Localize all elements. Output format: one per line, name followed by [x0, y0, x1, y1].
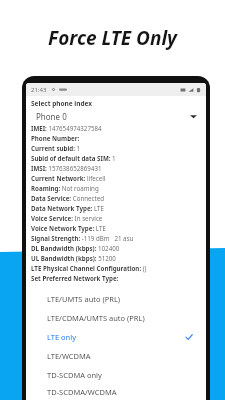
staticText: Voice Network Type: LTE: [31, 224, 201, 234]
staticText: LTE/WCDMA: [47, 351, 91, 361]
staticText: 21:43: [31, 86, 47, 94]
button[interactable]: TD-SCDMA/WCDMA: [35, 384, 203, 400]
button[interactable]: LTE only: [35, 327, 203, 346]
button[interactable]: LTE/CDMA/UMTS auto (PRL): [35, 308, 203, 327]
staticText: Force LTE Only: [48, 25, 177, 51]
staticText: Current subid: 1: [31, 144, 201, 154]
staticText: Phone Number:: [31, 134, 201, 144]
staticText: Voice Service: In service: [31, 214, 201, 224]
staticText: UL Bandwidth (kbps): 51200: [31, 254, 201, 264]
staticText: Signal Strength: -119 dBm 21 asu: [31, 234, 201, 244]
staticText: TD-SCDMA only: [47, 370, 102, 380]
staticText: Set Preferred Network Type:: [31, 274, 201, 284]
staticText: LTE/UMTS auto (PRL): [47, 294, 121, 304]
staticText: IMSI: 157638652869431: [31, 164, 201, 174]
staticText: Subid of default data SIM: 1: [31, 154, 201, 164]
other: Selected: [185, 333, 193, 341]
staticText: LTE Physical Channel Configuration: (): [31, 264, 201, 274]
staticText: Roaming: Not roaming: [31, 184, 201, 194]
other: Open phone index dropdown: [190, 114, 197, 119]
button[interactable]: TD-SCDMA only: [35, 365, 203, 384]
staticText: Select phone index: [31, 99, 93, 108]
staticText: Phone 0: [36, 111, 67, 122]
staticText: DL Bandwidth (kbps): 102400: [31, 244, 201, 254]
staticText: TD-SCDMA/WCDMA: [47, 387, 117, 397]
staticText: IMEI: 147654974327584: [31, 124, 201, 134]
staticText: LTE only: [47, 332, 77, 342]
staticText: Data Network Type: LTE: [31, 204, 201, 214]
button[interactable]: Phone 0: [31, 110, 201, 123]
button[interactable]: LTE/WCDMA: [35, 346, 203, 365]
button[interactable]: LTE/UMTS auto (PRL): [35, 289, 203, 308]
staticText: Data Service: Connected: [31, 194, 201, 204]
staticText: LTE/CDMA/UMTS auto (PRL): [47, 313, 145, 323]
staticText: Current Network: lifecell: [31, 174, 201, 184]
